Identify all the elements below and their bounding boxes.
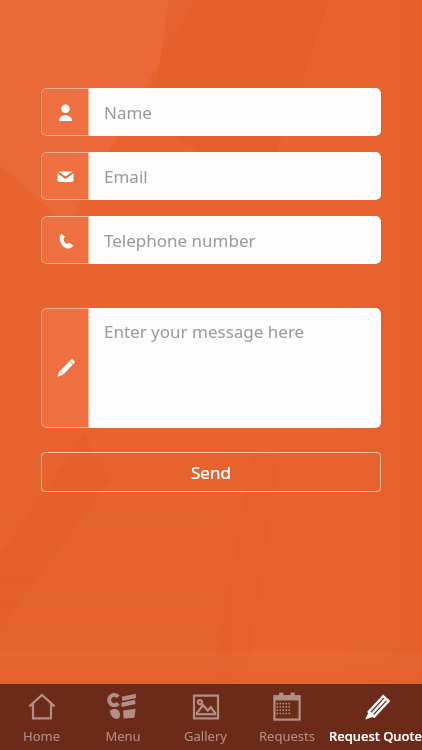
staticText: Home [23,727,60,745]
staticText: Email [104,165,148,188]
other: Name [41,88,89,136]
button[interactable]: Message [41,308,381,428]
staticText: Gallery [184,727,227,745]
other: Message [41,308,89,428]
staticText: Request Quote [329,727,422,745]
staticText: Telephone number [104,229,256,252]
other: Email [41,152,89,200]
staticText: Send [191,461,231,484]
staticText: Menu [105,727,141,745]
button[interactable]: Request Quote [329,692,422,750]
button[interactable]: Telephone [41,216,381,264]
button[interactable]: Requests [259,692,315,750]
button[interactable]: Menu [105,692,141,750]
staticText: Requests [259,727,315,745]
button[interactable]: Name [41,88,381,136]
staticText: Enter your message here [104,320,305,343]
button[interactable]: Email [41,152,381,200]
staticText: Name [104,101,152,124]
other: Telephone [41,216,89,264]
button[interactable]: Send [41,452,381,492]
button[interactable]: Gallery [184,692,227,750]
button[interactable]: Home [23,692,60,750]
